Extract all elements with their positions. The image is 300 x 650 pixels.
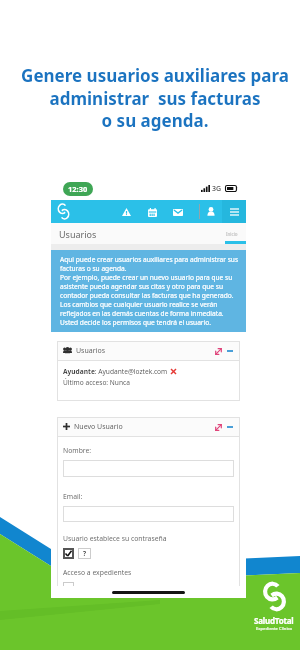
staticText: Aqui puede crear usuarios auxiliares par…	[60, 255, 239, 327]
staticText: Usuarios	[76, 346, 106, 356]
staticText: Usuarios	[59, 228, 97, 240]
button[interactable]: Calendario	[142, 201, 162, 223]
staticText: 3G	[212, 184, 222, 194]
button[interactable]: Alertas	[116, 201, 136, 223]
button[interactable]: Usuario establece su contraseña	[63, 548, 74, 559]
staticText: Nuevo Usuario	[74, 422, 123, 432]
button[interactable]: Ayuda	[78, 548, 91, 559]
button[interactable]: Acceso a expedientes	[63, 582, 74, 590]
button[interactable]: Eliminar usuario	[171, 369, 176, 374]
staticText: Email:	[63, 492, 83, 501]
staticText: Ayudante: Ayudante@loztek.com	[63, 367, 168, 376]
button[interactable]: Perfil	[200, 200, 222, 223]
staticText: Inicio	[226, 231, 238, 237]
button[interactable]: Expandir	[214, 423, 222, 431]
staticText: Acceso a expedientes	[63, 568, 132, 577]
staticText: 12:30	[68, 184, 88, 194]
staticText: Expediente Clínico	[256, 626, 293, 632]
staticText: Último acceso: Nunca	[63, 378, 130, 387]
button[interactable]: Minimizar	[226, 347, 234, 355]
button[interactable]: Minimizar	[226, 423, 234, 431]
staticText: Genere usuarios auxiliares para administ…	[10, 64, 300, 132]
staticText: ?	[83, 549, 87, 558]
staticText: SaludTotal	[254, 615, 294, 626]
button[interactable]: Inicio	[51, 200, 75, 223]
button[interactable]: Mensajes	[168, 201, 188, 223]
staticText: Nombre:	[63, 446, 92, 455]
button[interactable]: Menú	[222, 200, 246, 223]
staticText: Usuario establece su contraseña	[63, 534, 167, 543]
button[interactable]: Expandir	[214, 347, 222, 355]
